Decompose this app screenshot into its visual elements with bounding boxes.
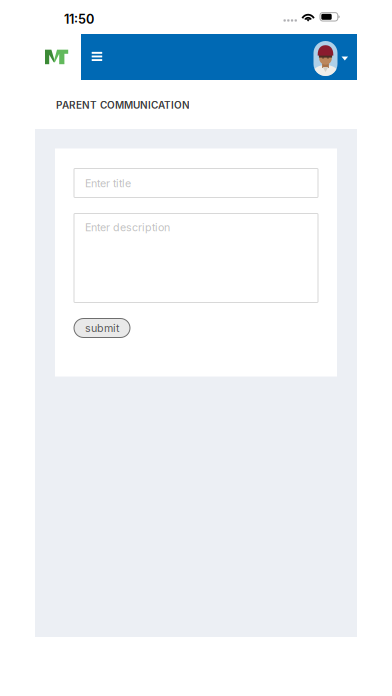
staticText: Enter title [85, 177, 131, 190]
staticText: submit [85, 321, 119, 334]
staticText: PARENT COMMUNICATION [56, 99, 190, 111]
staticText: Enter description [85, 221, 170, 234]
button[interactable]: Account menu [305, 36, 357, 81]
staticText: 11:50 [64, 11, 94, 27]
button[interactable]: Menu [81, 34, 114, 80]
button[interactable]: submit [74, 318, 130, 337]
